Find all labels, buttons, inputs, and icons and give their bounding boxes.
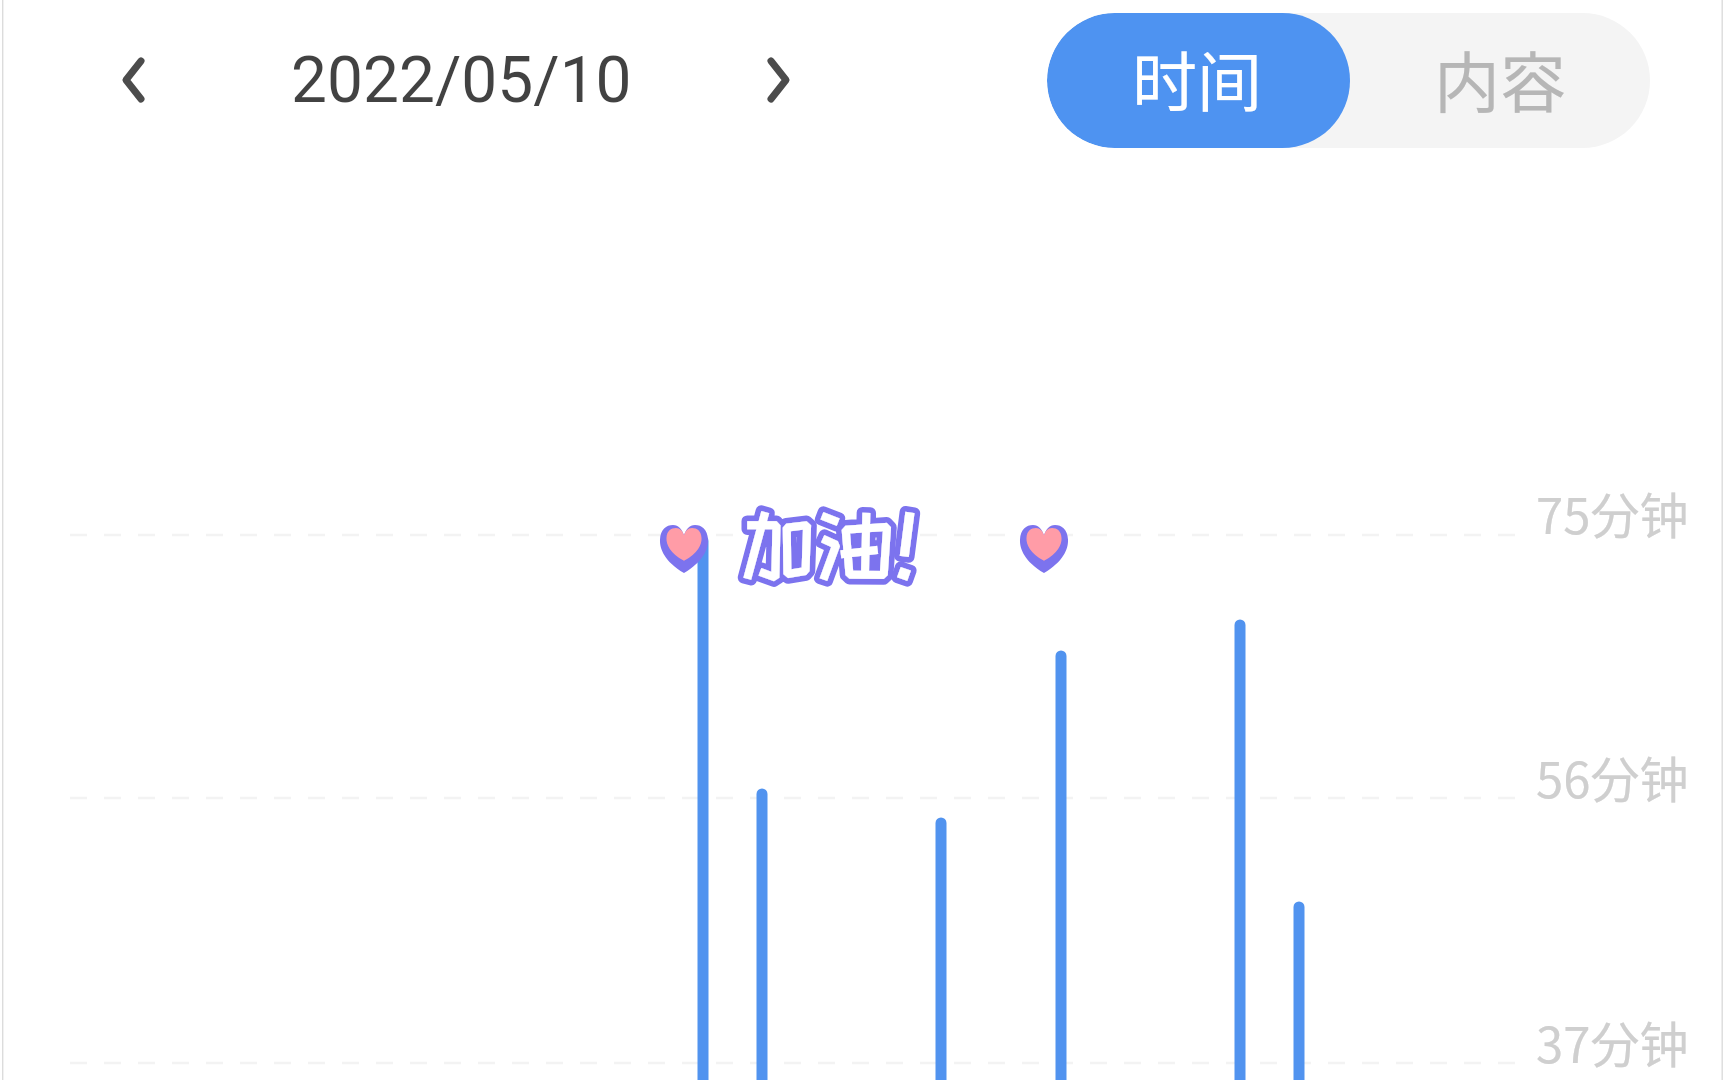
staticText: 内容 — [1434, 30, 1566, 126]
staticText: 2022/05/10 — [291, 43, 632, 118]
button[interactable]: Previous day — [99, 45, 169, 115]
button[interactable]: 时间 — [1047, 13, 1350, 148]
button[interactable]: 2022/05/10 — [265, 25, 655, 135]
staticText: 时间 — [1132, 31, 1263, 125]
button[interactable]: Next day — [743, 45, 813, 115]
button[interactable]: 内容 — [1350, 13, 1650, 148]
